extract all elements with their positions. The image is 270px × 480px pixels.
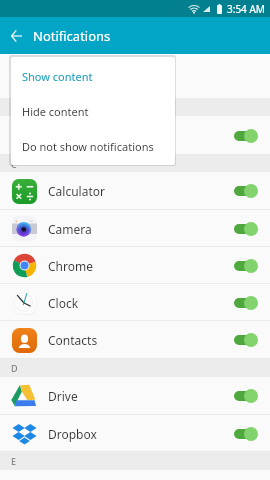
button[interactable]: Contacts bbox=[0, 321, 270, 359]
staticText: Drive bbox=[48, 388, 234, 404]
button[interactable]: Navigate up bbox=[0, 17, 33, 54]
staticText: Chrome bbox=[48, 258, 234, 274]
button[interactable]: Do not show notifications bbox=[11, 129, 175, 164]
button[interactable]: Dropbox bbox=[0, 415, 270, 452]
staticText: Calculator bbox=[48, 183, 234, 199]
button[interactable]: Drive bbox=[0, 377, 270, 415]
staticText: Do not show notifications bbox=[22, 139, 154, 154]
staticText: E bbox=[11, 455, 17, 467]
staticText: Hide content bbox=[22, 104, 89, 119]
button[interactable]: Clock bbox=[0, 284, 270, 321]
button[interactable]: Bluetooth share bbox=[0, 116, 270, 155]
button[interactable]: Calculator bbox=[0, 172, 270, 210]
button[interactable]: Show content bbox=[11, 59, 175, 94]
staticText: Camera bbox=[48, 221, 234, 237]
staticText: Contacts bbox=[48, 332, 234, 348]
button[interactable]: Camera bbox=[0, 210, 270, 247]
staticText: D bbox=[11, 362, 18, 374]
staticText: 3:54 AM bbox=[227, 2, 265, 16]
staticText: Clock bbox=[48, 295, 234, 311]
staticText: C bbox=[11, 158, 17, 170]
staticText: Notifications bbox=[33, 27, 111, 45]
staticText: Dropbox bbox=[48, 426, 234, 442]
button[interactable]: Hide content bbox=[11, 94, 175, 129]
staticText: Bluetooth share bbox=[48, 128, 234, 144]
button[interactable]: Chrome bbox=[0, 247, 270, 284]
staticText: Show content bbox=[22, 69, 93, 84]
